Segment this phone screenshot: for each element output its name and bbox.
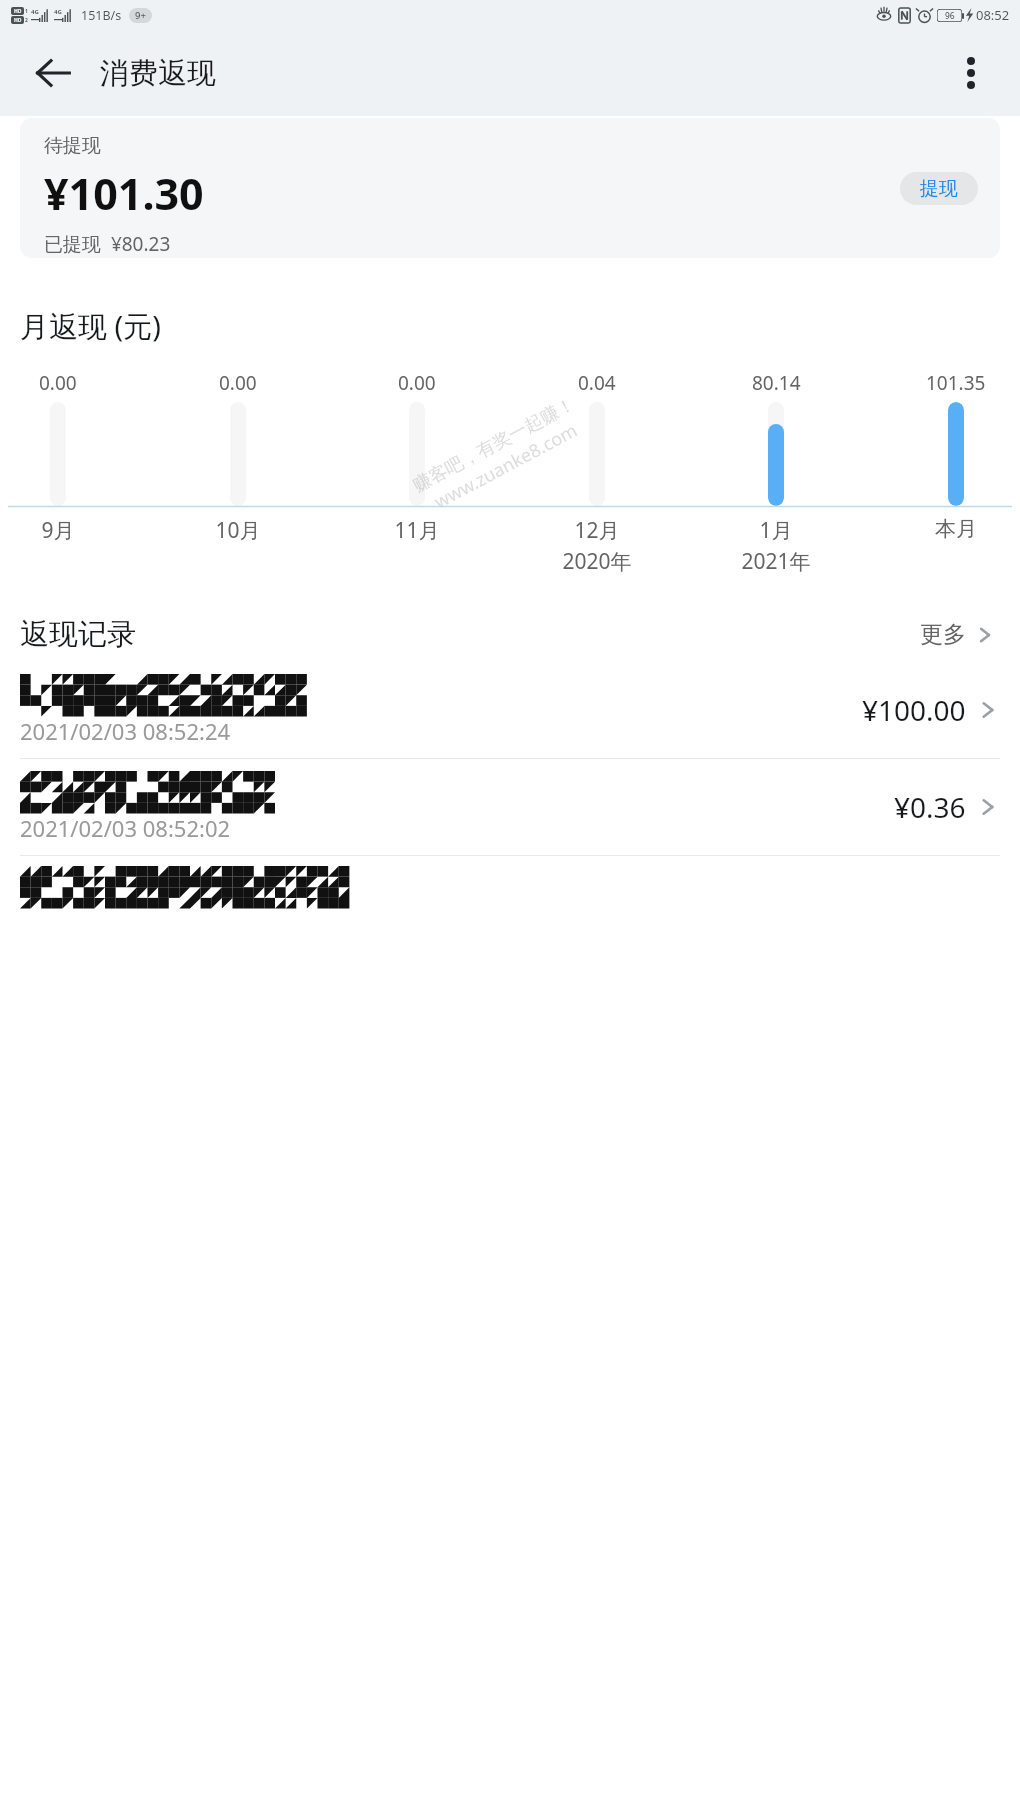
staticText: 1	[25, 8, 28, 15]
staticText: 0.00	[219, 370, 257, 396]
button[interactable]: 待提现	[20, 118, 1000, 258]
staticText: 08:52	[976, 6, 1010, 24]
staticText: 消费返现	[100, 55, 216, 92]
staticText: 月返现 (元)	[20, 306, 161, 346]
button[interactable]: More options	[944, 46, 998, 100]
staticText: 待提现	[44, 134, 101, 158]
staticText: 0.00	[39, 370, 77, 396]
staticText: HD	[14, 8, 22, 15]
staticText: 本月	[935, 516, 977, 542]
staticText: 101.35	[926, 370, 986, 396]
staticText: 2021年	[741, 547, 811, 576]
staticText: 更多	[920, 620, 966, 649]
button[interactable]: 更多	[916, 616, 1000, 653]
staticText: 2021/02/03 08:52:24	[20, 716, 231, 746]
staticText: 返现记录	[20, 616, 136, 653]
staticText: ¥101.30	[44, 164, 204, 223]
staticText: 提现	[920, 177, 958, 201]
staticText: www.zuanke8.com	[430, 418, 582, 514]
staticText: HD	[14, 17, 22, 24]
staticText: 2020年	[562, 547, 632, 576]
staticText: 4G	[31, 8, 39, 16]
button[interactable]: 2021/02/03 08:52:24	[0, 662, 1020, 758]
staticText: 0.04	[578, 370, 616, 396]
staticText: 4G	[54, 8, 62, 16]
button[interactable]	[0, 856, 1020, 916]
staticText: ¥100.00	[862, 691, 966, 729]
staticText: 9月	[41, 516, 75, 545]
staticText: 10月	[215, 516, 261, 545]
staticText: 12月	[574, 516, 620, 545]
button[interactable]: Back	[26, 46, 80, 100]
staticText: 80.14	[752, 370, 801, 396]
staticText: 赚客吧，有奖一起赚！	[409, 393, 579, 497]
staticText: 151B/s	[81, 7, 122, 24]
button[interactable]: 2021/02/03 08:52:02	[0, 759, 1020, 855]
staticText: 2021/02/03 08:52:02	[20, 813, 231, 843]
staticText: 1月	[759, 516, 793, 545]
staticText: 96	[945, 10, 955, 22]
staticText: 0.00	[398, 370, 436, 396]
button[interactable]: 提现	[900, 172, 978, 205]
staticText: 11月	[394, 516, 440, 545]
staticText: 9+	[135, 9, 146, 22]
staticText: 已提现 ¥80.23	[44, 231, 171, 257]
staticText: ¥0.36	[894, 788, 966, 826]
staticText: 2	[25, 17, 28, 24]
